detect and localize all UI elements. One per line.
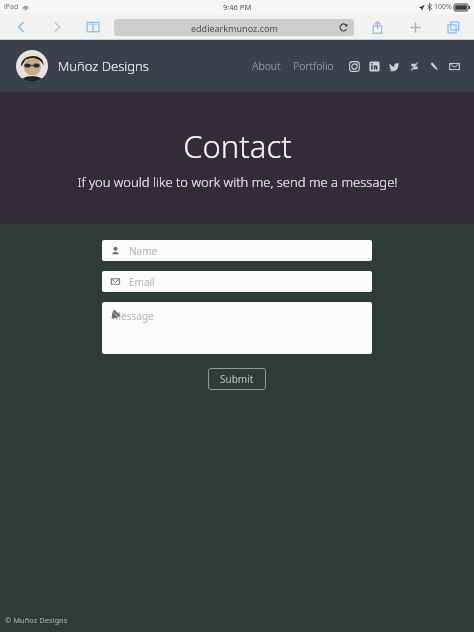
button[interactable]: Email	[102, 271, 372, 292]
button[interactable]: Twitter	[384, 56, 404, 76]
staticText: eddiearkmunoz.com	[191, 22, 278, 34]
staticText: Email	[129, 275, 155, 289]
button[interactable]: Message	[102, 302, 372, 354]
button[interactable]: Back	[10, 16, 32, 38]
button[interactable]: Share	[366, 16, 388, 38]
button[interactable]: eddiearkmunoz.com	[114, 19, 354, 36]
staticText: 100%	[434, 2, 452, 12]
button[interactable]: Portfolio	[289, 55, 338, 77]
staticText: © Muñoz Designs	[5, 615, 68, 625]
button[interactable]: LinkedIn	[364, 56, 384, 76]
staticText: Contact	[183, 125, 292, 167]
staticText: About	[252, 59, 281, 73]
button[interactable]: About	[248, 55, 285, 77]
button[interactable]: Portfolio brush	[424, 56, 444, 76]
staticText: 9:46 PM	[223, 2, 252, 12]
button[interactable]: New tab	[404, 16, 426, 38]
staticText: Submit	[220, 372, 254, 386]
button[interactable]: Submit	[208, 368, 266, 390]
button[interactable]: Muñoz Designs	[16, 50, 149, 82]
staticText: Name	[129, 244, 158, 258]
button[interactable]: Email	[444, 56, 464, 76]
staticText: Portfolio	[293, 59, 334, 73]
staticText: Message	[112, 309, 154, 323]
button[interactable]: Name	[102, 240, 372, 261]
button[interactable]: DeviantArt	[404, 56, 424, 76]
staticText: Muñoz Designs	[58, 57, 149, 75]
button[interactable]: Bookmarks	[82, 16, 104, 38]
button[interactable]: Instagram	[344, 56, 364, 76]
staticText: If you would like to work with me, send …	[77, 173, 398, 191]
button[interactable]: Tabs	[442, 16, 464, 38]
staticText: iPad	[4, 2, 19, 12]
button[interactable]: Forward	[46, 16, 68, 38]
